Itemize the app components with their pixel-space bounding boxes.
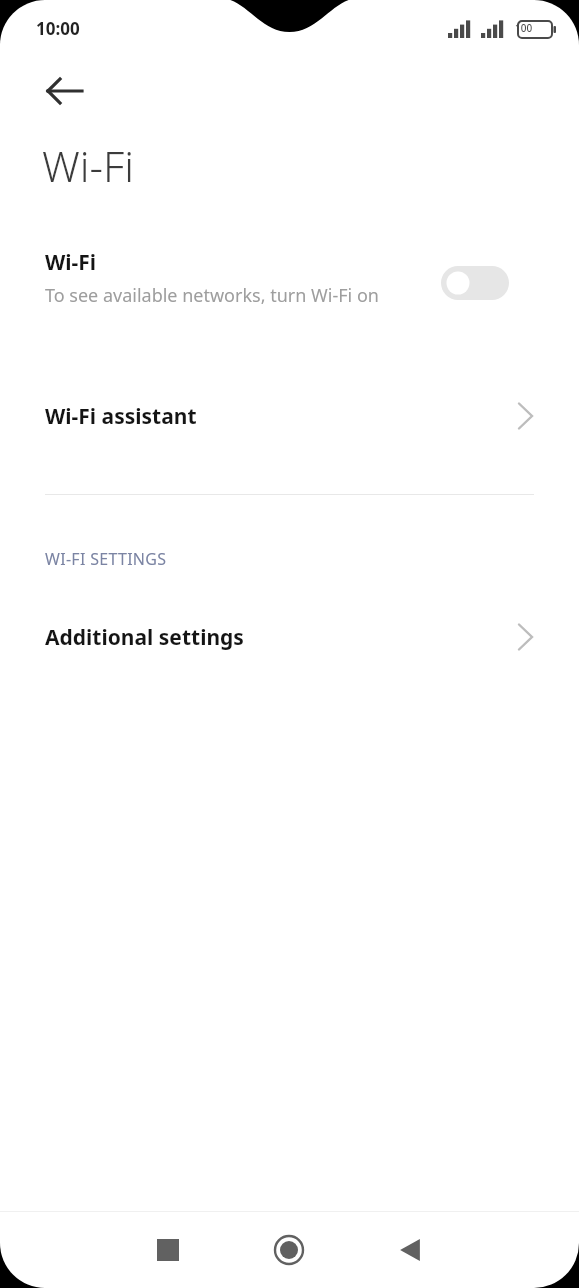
button[interactable]: Home: [241, 1212, 337, 1288]
staticText: 10:00: [36, 17, 80, 40]
staticText: Additional settings: [45, 623, 244, 652]
button[interactable]: Additional settings: [0, 604, 579, 670]
button[interactable]: Back: [362, 1212, 458, 1288]
button[interactable]: Recents: [120, 1212, 216, 1288]
button[interactable]: Wi-Fi: [0, 240, 579, 350]
staticText: Wi-Fi: [45, 248, 97, 277]
staticText: 100: [515, 21, 533, 35]
staticText: To see available networks, turn Wi-Fi on: [45, 283, 379, 308]
button[interactable]: Wi-Fi assistant: [0, 383, 579, 449]
staticText: Wi-Fi: [42, 137, 134, 194]
button[interactable]: Wi-Fi toggle: [441, 266, 509, 300]
staticText: Wi-Fi assistant: [45, 402, 197, 431]
button[interactable]: Back: [33, 60, 95, 122]
staticText: WI-FI SETTINGS: [45, 548, 167, 570]
